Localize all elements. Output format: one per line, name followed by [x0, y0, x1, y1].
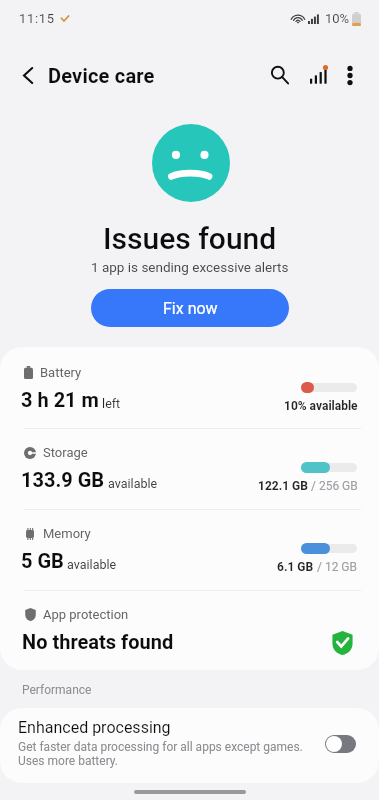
- staticText: available: [105, 476, 158, 491]
- staticText: 10% available: [284, 399, 358, 413]
- staticText: Uses more battery.: [18, 754, 119, 768]
- staticText: / 256 GB: [308, 479, 358, 493]
- staticText: App protection: [43, 607, 129, 622]
- staticText: / 12 GB: [314, 560, 358, 574]
- staticText: 122.1 GB: [258, 479, 308, 493]
- staticText: Issues found: [103, 221, 277, 256]
- button[interactable]: Fix now: [91, 289, 289, 327]
- staticText: Battery: [40, 365, 82, 380]
- staticText: 6.1 GB: [277, 560, 314, 574]
- staticText: 5 GB: [21, 549, 64, 572]
- button[interactable]: Enhanced processing: [0, 708, 379, 783]
- button[interactable]: App protection: [0, 600, 379, 658]
- button[interactable]: Memory: [0, 519, 379, 575]
- staticText: available: [64, 557, 117, 572]
- button[interactable]: Diagnostics: [298, 55, 338, 95]
- staticText: left: [99, 396, 121, 411]
- button[interactable]: Storage: [0, 438, 379, 494]
- button[interactable]: More options: [330, 55, 370, 95]
- button[interactable]: Search: [260, 55, 300, 95]
- staticText: No threats found: [22, 630, 174, 653]
- staticText: 3 h 21 m: [21, 388, 99, 411]
- staticText: 133.9 GB: [21, 468, 105, 491]
- staticText: Performance: [22, 683, 92, 697]
- staticText: 1 app is sending excessive alerts: [91, 259, 289, 275]
- staticText: Memory: [43, 526, 91, 541]
- staticText: 10%: [325, 11, 350, 26]
- staticText: Storage: [43, 445, 88, 460]
- staticText: Fix now: [163, 299, 218, 318]
- button[interactable]: Battery: [0, 358, 379, 414]
- staticText: 11:15: [19, 11, 55, 26]
- button[interactable]: Enhanced processing: [325, 735, 356, 753]
- staticText: Enhanced processing: [18, 718, 171, 737]
- staticText: Device care: [48, 64, 155, 87]
- staticText: Get faster data processing for all apps …: [18, 740, 303, 754]
- button[interactable]: Back: [8, 55, 48, 95]
